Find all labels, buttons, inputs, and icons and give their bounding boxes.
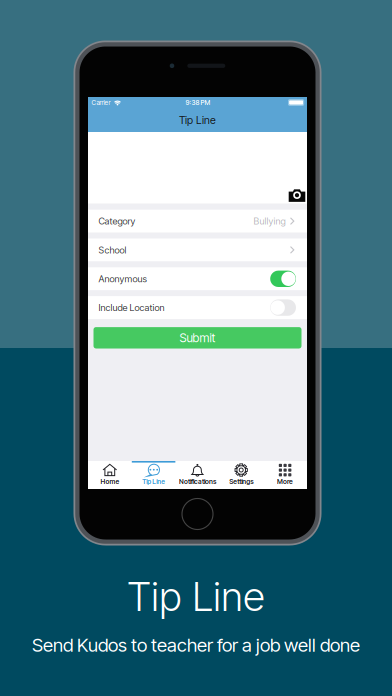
staticText: Home — [100, 478, 119, 486]
button[interactable]: More — [263, 461, 307, 489]
staticText: Tip Line — [179, 114, 216, 126]
button[interactable]: Settings — [219, 461, 263, 489]
staticText: Notifications — [179, 478, 216, 486]
button[interactable]: Submit — [93, 327, 301, 348]
staticText: School — [98, 244, 126, 255]
staticText: Settings — [229, 478, 253, 486]
staticText: Send Kudos to teacher for a job well don… — [32, 634, 360, 656]
staticText: More — [277, 478, 293, 486]
staticText: Category — [98, 216, 135, 227]
button[interactable]: Add photo — [289, 189, 305, 202]
button[interactable]: Notifications — [176, 461, 219, 489]
button[interactable]: Include Location — [88, 296, 307, 319]
staticText: 9:38 PM — [185, 99, 210, 106]
staticText: Tip Line — [142, 478, 165, 486]
staticText: Submit — [179, 331, 215, 345]
staticText: Bullying — [253, 216, 285, 227]
staticText: Include Location — [98, 302, 164, 313]
button[interactable]: School — [88, 238, 307, 261]
button[interactable]: Home — [88, 461, 132, 489]
button[interactable]: Tip Line — [132, 461, 176, 489]
button[interactable]: Anonymous — [88, 267, 307, 290]
staticText: Anonymous — [98, 273, 146, 284]
staticText: Carrier — [91, 99, 110, 106]
staticText: Tip Line — [127, 573, 265, 620]
button[interactable]: Category — [88, 210, 307, 233]
